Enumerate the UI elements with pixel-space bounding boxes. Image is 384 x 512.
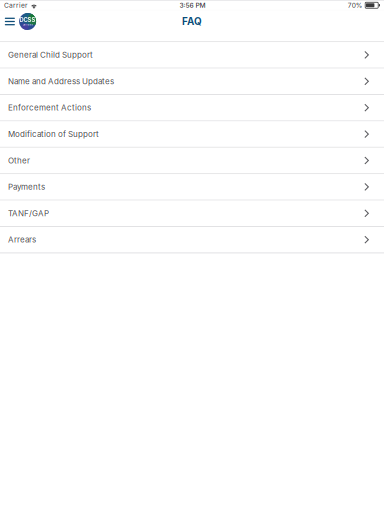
staticText: Carrier bbox=[4, 1, 28, 9]
staticText: General Child Support bbox=[8, 50, 93, 60]
staticText: 3:56 PM bbox=[180, 1, 206, 9]
button[interactable]: Name and Address Updates bbox=[0, 69, 384, 95]
button[interactable]: Menu bbox=[0, 10, 40, 32]
staticText: Enforcement Actions bbox=[8, 103, 91, 113]
staticText: TANF/GAP bbox=[8, 208, 49, 218]
button[interactable]: TANF/GAP bbox=[0, 201, 384, 227]
button[interactable]: Arrears bbox=[0, 227, 384, 253]
staticText: 70% bbox=[348, 1, 363, 9]
staticText: Arrears bbox=[8, 235, 36, 245]
button[interactable]: Modification of Support bbox=[0, 121, 384, 148]
button[interactable]: Enforcement Actions bbox=[0, 95, 384, 121]
staticText: Other bbox=[8, 156, 30, 165]
staticText: Payments bbox=[8, 182, 45, 192]
button[interactable]: Payments bbox=[0, 174, 384, 201]
staticText: california bbox=[23, 23, 33, 26]
staticText: FAQ bbox=[182, 15, 202, 27]
staticText: Modification of Support bbox=[8, 129, 99, 139]
staticText: Name and Address Updates bbox=[8, 76, 114, 86]
button[interactable]: General Child Support bbox=[0, 42, 384, 69]
button[interactable]: Other bbox=[0, 148, 384, 174]
staticText: DCSS bbox=[20, 16, 36, 23]
